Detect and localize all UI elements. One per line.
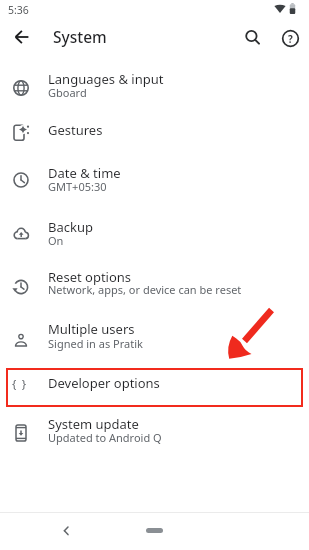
button[interactable] (0, 108, 309, 144)
button[interactable] (0, 205, 309, 251)
button[interactable] (0, 402, 309, 448)
staticText: ? (288, 32, 293, 46)
button[interactable] (0, 151, 309, 197)
staticText: Date & time (48, 164, 121, 182)
staticText: Multiple users (48, 320, 135, 338)
staticText: { } (12, 376, 28, 392)
staticText: Gestures (48, 121, 103, 139)
button[interactable] (8, 29, 36, 45)
button[interactable]: ? (281, 29, 301, 49)
button[interactable] (0, 57, 309, 103)
staticText: 5:36 (8, 3, 29, 17)
button[interactable] (0, 307, 309, 353)
button[interactable] (0, 255, 309, 301)
staticText: Backup (48, 218, 93, 236)
staticText: Reset options (48, 268, 132, 286)
staticText: Updated to Android Q (48, 430, 162, 445)
staticText: Developer options (48, 374, 160, 392)
button[interactable] (0, 361, 309, 397)
staticText: System (53, 26, 107, 47)
staticText: System update (48, 415, 139, 433)
staticText: Network, apps, or device can be reset (48, 282, 242, 297)
button[interactable] (146, 528, 163, 533)
staticText: On (48, 233, 64, 248)
staticText: Languages & input (48, 70, 164, 88)
staticText: Gboard (48, 85, 87, 100)
staticText: Signed in as Pratik (48, 336, 143, 351)
button[interactable] (58, 523, 74, 539)
button[interactable] (243, 28, 263, 48)
staticText: GMT+05:30 (48, 179, 107, 194)
